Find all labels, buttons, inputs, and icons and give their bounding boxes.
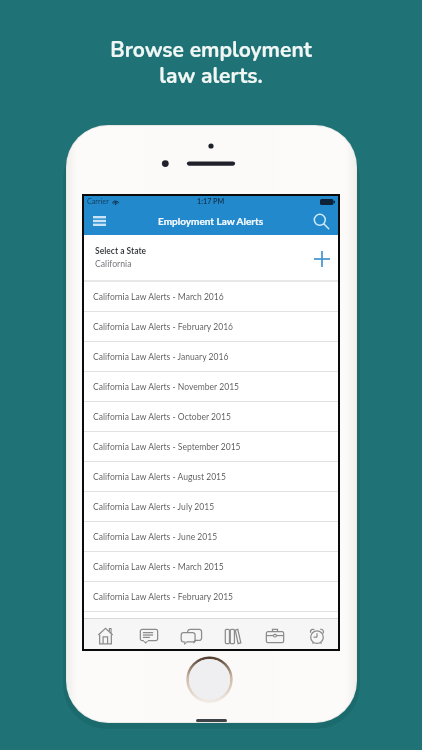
button[interactable]: California Law Alerts - June 2015: [84, 522, 338, 552]
button[interactable]: California Law Alerts - October 2015: [84, 402, 338, 432]
staticText: California Law Alerts - June 2015: [93, 532, 218, 542]
staticText: California Law Alerts - November 2015: [93, 382, 240, 392]
staticText: Browse employment law alerts.: [0, 36, 422, 90]
button[interactable]: Briefcase: [254, 619, 296, 649]
staticText: California Law Alerts - September 2015: [93, 442, 241, 452]
button[interactable]: Conversations: [170, 619, 212, 649]
button[interactable]: Messages: [127, 619, 170, 649]
button[interactable]: California Law Alerts - February 2016: [84, 312, 338, 342]
staticText: California Law Alerts - July 2015: [93, 502, 215, 512]
button[interactable]: California Law Alerts - January 2016: [84, 342, 338, 372]
button[interactable]: California Law Alerts - September 2015: [84, 432, 338, 462]
button[interactable]: Home: [84, 619, 127, 649]
button[interactable]: California Law Alerts - November 2015: [84, 372, 338, 402]
staticText: California Law Alerts - January 2016: [93, 352, 229, 362]
staticText: California Law Alerts - March 2015: [93, 562, 224, 572]
staticText: Employment Law Alerts: [158, 215, 264, 227]
button[interactable]: Add state: [311, 248, 333, 270]
staticText: Carrier: [87, 197, 109, 206]
button[interactable]: California Law Alerts - July 2015: [84, 492, 338, 522]
button[interactable]: Home button: [186, 656, 233, 703]
staticText: California Law Alerts - February 2016: [93, 322, 234, 332]
button[interactable]: Alarms: [296, 619, 338, 649]
staticText: California Law Alerts - February 2015: [93, 592, 234, 602]
button[interactable]: California Law Alerts - August 2015: [84, 462, 338, 492]
staticText: California: [95, 258, 132, 268]
button[interactable]: Search: [311, 207, 331, 235]
staticText: Select a State: [95, 246, 147, 256]
button[interactable]: Menu: [88, 207, 110, 235]
button[interactable]: California Law Alerts - March 2015: [84, 552, 338, 582]
staticText: California Law Alerts - October 2015: [93, 412, 231, 422]
button[interactable]: California Law Alerts - February 2015: [84, 582, 338, 612]
staticText: 1:17 PM: [197, 197, 225, 206]
staticText: California Law Alerts - March 2016: [93, 292, 224, 302]
staticText: California Law Alerts - August 2015: [93, 472, 227, 482]
button[interactable]: California Law Alerts - March 2016: [84, 282, 338, 312]
button[interactable]: Library: [212, 619, 254, 649]
button[interactable]: Select a State: [84, 235, 338, 280]
